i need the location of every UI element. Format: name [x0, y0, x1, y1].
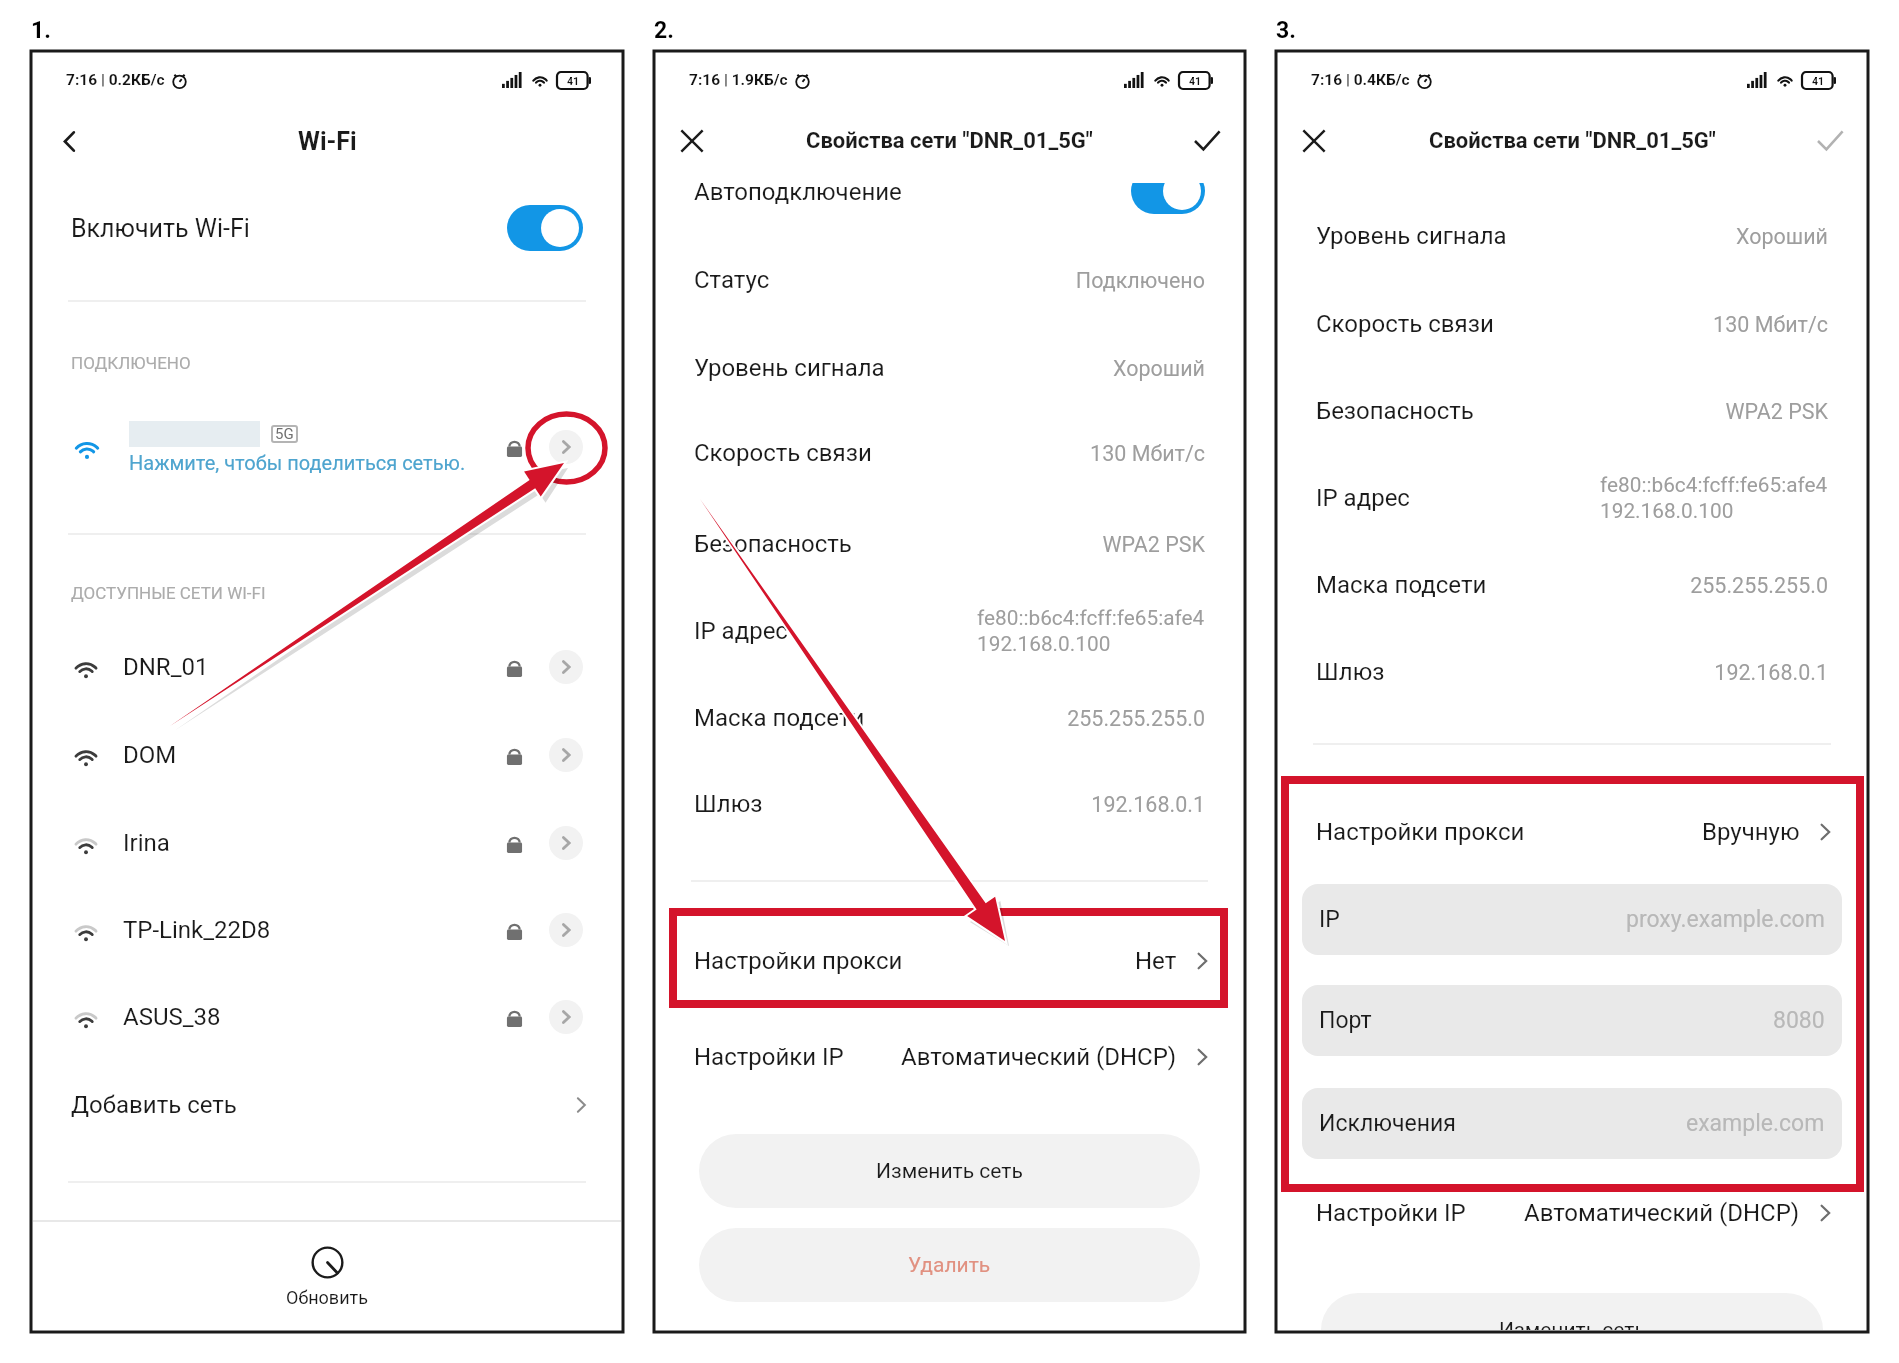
button[interactable]: Обновить: [33, 1233, 621, 1330]
staticText: Wi-Fi: [298, 127, 357, 156]
button[interactable]: Автоподключение: [656, 155, 1243, 229]
button[interactable]: IP: [1302, 884, 1842, 955]
button[interactable]: ASUS_38: [33, 974, 621, 1060]
staticText: Порт: [1319, 1007, 1372, 1034]
staticText: IP: [1319, 906, 1340, 933]
staticText: 192.168.0.100: [977, 632, 1111, 656]
staticText: ДОСТУПНЫЕ СЕТИ WI-FI: [71, 583, 266, 603]
button[interactable]: Настройки IP: [656, 1017, 1243, 1097]
staticText: fe80::b6c4:fcff:fe65:afe4: [977, 606, 1205, 630]
button[interactable]: Скорость связи: [1278, 284, 1866, 364]
button[interactable]: Безопасность: [1278, 371, 1866, 451]
staticText: 7:16 | 0.2КБ/c: [66, 71, 165, 89]
staticText: Скорость связи: [1316, 310, 1494, 338]
staticText: 130 Мбит/с: [1090, 441, 1205, 466]
button[interactable]: 5G: [33, 395, 621, 499]
staticText: Скорость связи: [694, 439, 872, 467]
staticText: WPA2 PSK: [1102, 532, 1205, 557]
staticText: Маска подсети: [694, 704, 865, 732]
button[interactable]: DOM: [33, 712, 621, 798]
button[interactable]: Настройки прокси: [656, 921, 1243, 1001]
button[interactable]: IP адрес: [1278, 455, 1866, 541]
button[interactable]: Настройки IP: [1278, 1173, 1866, 1253]
button[interactable]: Настройки прокси: [1278, 792, 1866, 872]
button[interactable]: Уровень сигнала: [656, 328, 1243, 408]
staticText: Хороший: [1112, 356, 1205, 381]
staticText: Включить Wi-Fi: [71, 214, 250, 243]
staticText: Изменить сеть: [1499, 1318, 1646, 1330]
staticText: Безопасность: [694, 530, 852, 558]
staticText: Нажмите, чтобы поделиться сетью.: [129, 451, 466, 474]
staticText: Добавить сеть: [71, 1091, 237, 1119]
staticText: Уровень сигнала: [1316, 222, 1507, 250]
button[interactable]: Back: [45, 117, 93, 165]
button[interactable]: Close: [668, 117, 716, 165]
staticText: Уровень сигнала: [694, 354, 885, 382]
button[interactable]: Маска подсети: [656, 678, 1243, 758]
staticText: 41: [567, 75, 580, 87]
button[interactable]: DNR_01: [33, 624, 621, 710]
button[interactable]: Порт: [1302, 985, 1842, 1056]
staticText: Свойства сети "DNR_01_5G": [806, 128, 1093, 154]
button[interactable]: IP адрес: [656, 588, 1243, 674]
staticText: Настройки IP: [1316, 1199, 1466, 1227]
button[interactable]: Изменить сеть: [699, 1134, 1200, 1208]
button[interactable]: Безопасность: [656, 504, 1243, 584]
staticText: Настройки прокси: [694, 947, 903, 975]
staticText: Подключено: [1075, 268, 1205, 293]
staticText: Обновить: [286, 1287, 368, 1308]
button[interactable]: Irina: [33, 800, 621, 886]
staticText: IP адрес: [694, 617, 788, 645]
staticText: Нет: [1135, 947, 1177, 975]
button[interactable]: Close: [1290, 117, 1338, 165]
button[interactable]: Включить Wi-Fi: [33, 185, 621, 271]
button[interactable]: Статус: [656, 240, 1243, 320]
staticText: Автоподключение: [694, 178, 902, 206]
button[interactable]: Save: [1183, 117, 1231, 165]
staticText: WPA2 PSK: [1725, 399, 1828, 424]
staticText: 8080: [1773, 1007, 1825, 1034]
staticText: 7:16 | 1.9КБ/c: [689, 71, 788, 89]
staticText: Маска подсети: [1316, 571, 1487, 599]
staticText: fe80::b6c4:fcff:fe65:afe4: [1600, 473, 1828, 497]
staticText: proxy.example.com: [1626, 906, 1825, 933]
staticText: Автоматический (DHCP): [1524, 1199, 1800, 1227]
button[interactable]: Save: [1806, 117, 1854, 165]
staticText: 192.168.0.1: [1091, 792, 1205, 817]
staticText: Шлюз: [1316, 658, 1385, 686]
staticText: IP адрес: [1316, 484, 1410, 512]
button[interactable]: Удалить: [699, 1228, 1200, 1302]
staticText: Вручную: [1702, 818, 1800, 846]
staticText: 7:16 | 0.4КБ/c: [1311, 71, 1410, 89]
staticText: Безопасность: [1316, 397, 1474, 425]
staticText: 5G: [275, 425, 294, 443]
staticText: Удалить: [908, 1253, 991, 1278]
staticText: 255.255.255.0: [1067, 706, 1205, 731]
button[interactable]: Маска подсети: [1278, 545, 1866, 625]
staticText: Шлюз: [694, 790, 763, 818]
staticText: 192.168.0.100: [1600, 499, 1734, 523]
staticText: Автоматический (DHCP): [901, 1043, 1177, 1071]
button[interactable]: Исключения: [1302, 1088, 1842, 1159]
staticText: 1.: [31, 17, 51, 44]
button[interactable]: TP-Link_22D8: [33, 887, 621, 973]
button[interactable]: Шлюз: [656, 764, 1243, 844]
staticText: Статус: [694, 266, 770, 294]
staticText: Настройки прокси: [1316, 818, 1525, 846]
button[interactable]: Скорость связи: [656, 413, 1243, 493]
staticText: ASUS_38: [123, 1003, 221, 1031]
button[interactable]: Добавить сеть: [33, 1065, 621, 1145]
staticText: 41: [1189, 75, 1202, 87]
staticText: Irina: [123, 829, 170, 857]
staticText: ПОДКЛЮЧЕНО: [71, 353, 191, 373]
button[interactable]: Уровень сигнала: [1278, 196, 1866, 276]
staticText: Изменить сеть: [876, 1159, 1023, 1184]
button[interactable]: Изменить сеть: [1321, 1293, 1823, 1330]
staticText: 255.255.255.0: [1690, 573, 1828, 598]
button[interactable]: Шлюз: [1278, 632, 1866, 712]
staticText: Исключения: [1319, 1110, 1456, 1137]
staticText: 130 Мбит/с: [1713, 312, 1828, 337]
staticText: Хороший: [1735, 224, 1828, 249]
staticText: 192.168.0.1: [1714, 660, 1828, 685]
staticText: TP-Link_22D8: [123, 916, 271, 944]
